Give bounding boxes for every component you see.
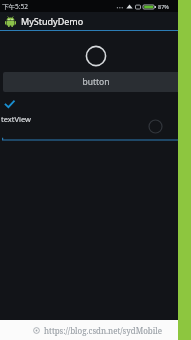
staticText: 87%: [158, 3, 169, 10]
staticText: 下午5:52: [2, 2, 28, 11]
staticText: textView: [1, 114, 31, 124]
staticText: button: [82, 76, 110, 88]
staticText: MyStudyDemo: [21, 15, 84, 27]
button[interactable]: [2, 137, 189, 141]
staticText: https://blog.csdn.net/sydMobile: [44, 325, 163, 336]
button[interactable]: button: [3, 72, 188, 92]
button[interactable]: [4, 99, 15, 110]
